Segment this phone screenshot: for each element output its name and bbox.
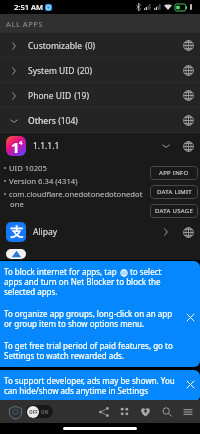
staticText: 1	[11, 137, 20, 156]
staticText: UID 10205	[9, 163, 47, 173]
staticText: 2:51 AM	[14, 2, 44, 12]
staticText: Others	[28, 115, 56, 127]
staticText: To support developer, ads may be shown. …	[4, 376, 178, 396]
button[interactable]: Others	[0, 108, 200, 133]
button[interactable]: APP INFO	[150, 166, 198, 180]
other: Block internet	[183, 227, 194, 238]
button[interactable]: Dismiss	[184, 378, 197, 391]
button[interactable]: Dismiss	[184, 311, 197, 324]
button[interactable]: DATA LIMIT	[150, 185, 198, 199]
button[interactable]: Share	[93, 401, 114, 422]
staticText: To organize app groups, long-click on an…	[4, 309, 178, 329]
staticText: Version 6.34 (4314)	[9, 176, 78, 186]
staticText: ALL APPS	[6, 19, 44, 29]
other: Block internet	[183, 90, 194, 101]
staticText: Alipay	[33, 226, 58, 238]
other: Block internet	[183, 65, 194, 76]
staticText: one	[10, 199, 24, 209]
other: Block internet	[120, 269, 128, 277]
button[interactable]: System UID	[0, 58, 200, 83]
button[interactable]: 1	[0, 133, 200, 159]
button[interactable]: Apps	[114, 401, 135, 422]
staticText: Phone UID	[28, 90, 72, 102]
staticText: com.cloudflare.onedotonedotonedot	[9, 189, 143, 199]
staticText: DATA LIMIT	[157, 188, 192, 196]
button[interactable]: Net blocker	[6, 403, 24, 421]
staticText: APP INFO	[159, 169, 189, 177]
staticText: ON	[41, 409, 49, 415]
button[interactable]: Search	[156, 401, 177, 422]
staticText: 1.1.1.1	[33, 140, 60, 152]
button[interactable]: Menu	[177, 401, 198, 422]
staticText: OFF	[29, 409, 38, 415]
staticText: To get free trial period of paid feature…	[4, 341, 178, 361]
button[interactable]: OFF	[26, 405, 53, 418]
staticText: System UID	[28, 65, 75, 77]
staticText: (19)	[72, 90, 90, 102]
button[interactable]: Donate	[135, 401, 156, 422]
button[interactable]: Phone UID	[0, 83, 200, 108]
button[interactable]: DATA USAGE	[150, 204, 198, 218]
staticText: (104)	[56, 115, 78, 127]
other: Block internet	[183, 115, 194, 126]
staticText: Customizable	[28, 40, 83, 52]
other: Block internet	[183, 40, 194, 51]
button[interactable]: 支	[0, 219, 200, 245]
other: Block internet	[183, 141, 194, 152]
staticText: 支	[10, 224, 23, 240]
staticText: (20)	[75, 65, 93, 77]
staticText: 4	[19, 139, 23, 147]
button[interactable]: Customizable	[0, 33, 200, 58]
staticText: To block internet for apps, tap to selec…	[4, 267, 178, 297]
staticText: (0)	[83, 40, 96, 52]
staticText: DATA USAGE	[155, 207, 194, 215]
